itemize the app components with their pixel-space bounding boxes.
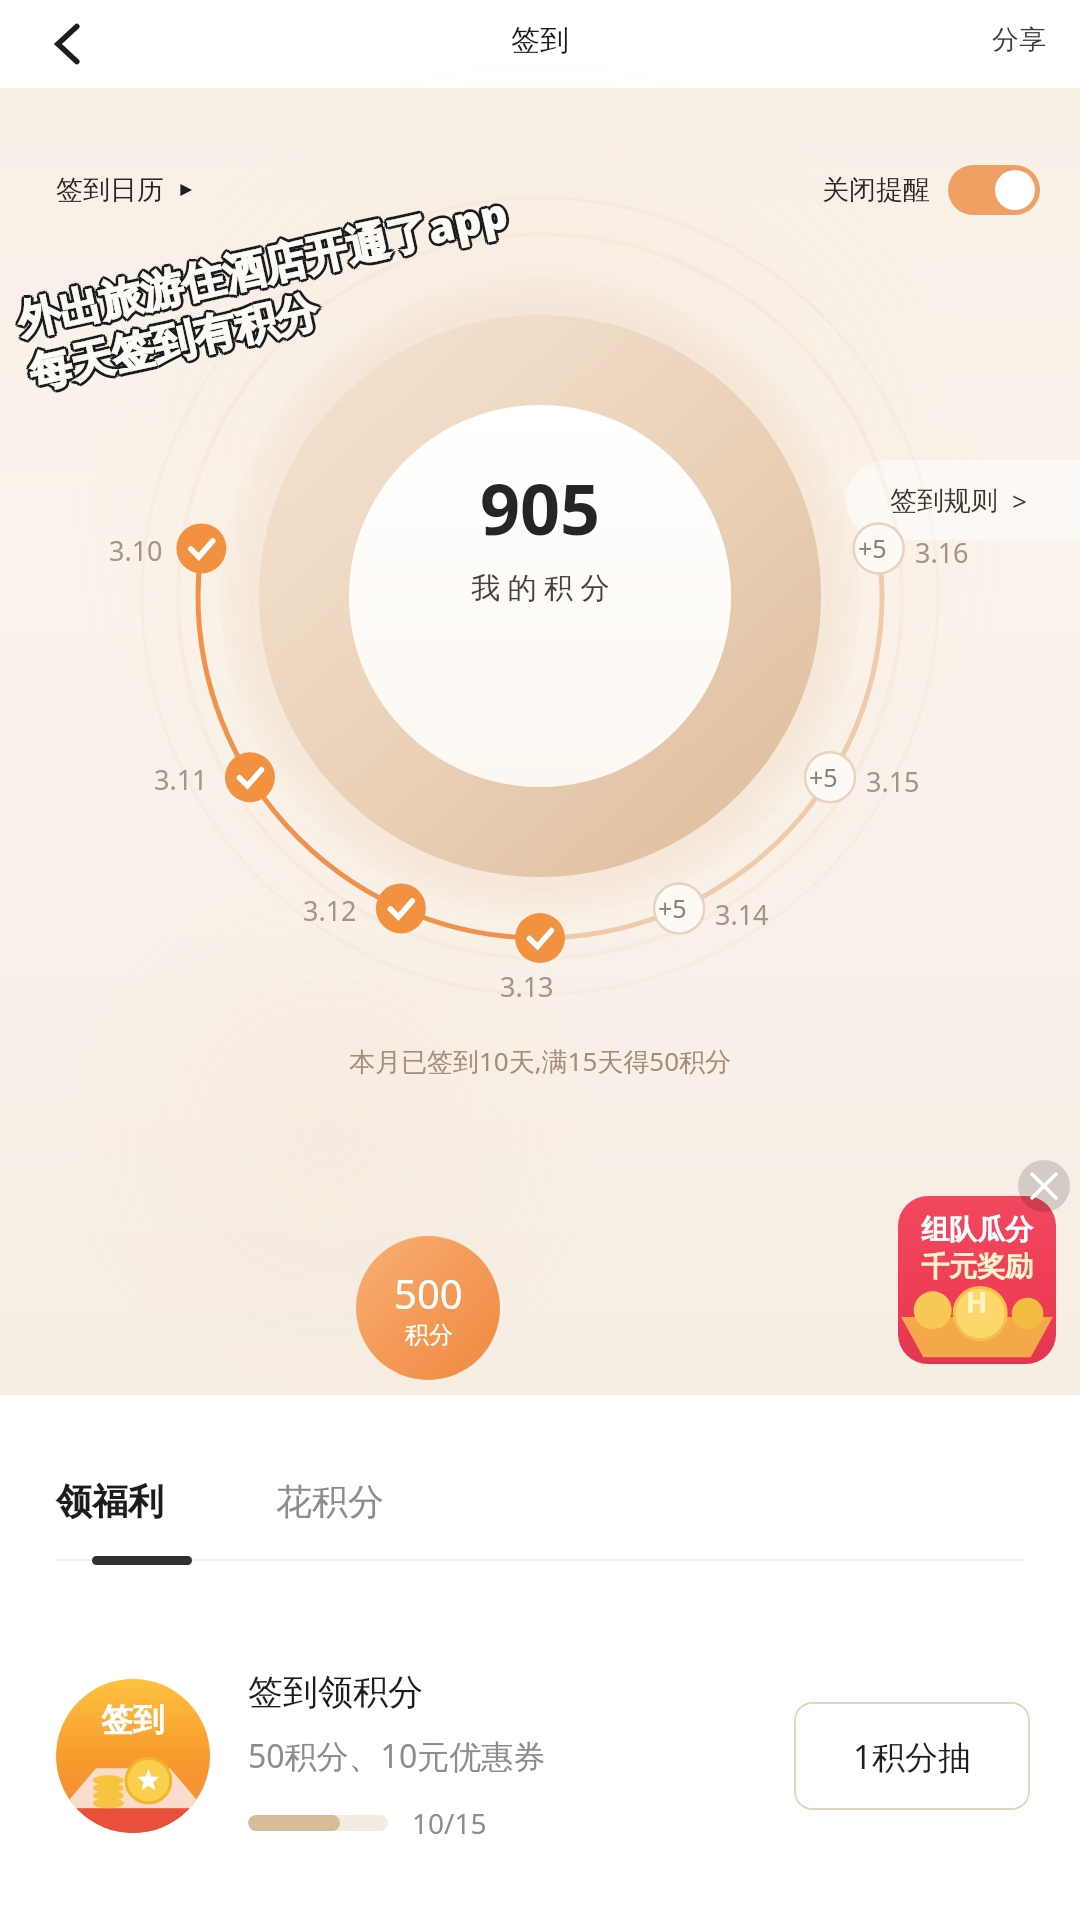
staticText: 3.14	[715, 896, 769, 933]
staticText: 每天签到有积分	[26, 283, 325, 398]
staticText: 3.11	[154, 761, 208, 798]
button[interactable]: 领福利	[50, 1467, 170, 1536]
button[interactable]: 签到规则	[846, 460, 1080, 540]
staticText: 50积分、10元优惠券	[248, 1734, 546, 1778]
staticText: 1积分抽	[853, 1734, 971, 1779]
staticText: 外出旅游住酒店开通了app	[11, 180, 513, 344]
staticText: 每天签到有积分	[24, 283, 322, 398]
button[interactable]: 分享	[958, 11, 1080, 77]
button[interactable]: 签到日历	[48, 165, 204, 215]
staticText: 外出旅游住酒店开通了app	[13, 181, 515, 345]
button[interactable]: 花积分	[270, 1467, 390, 1536]
staticText: 每天签到有积分	[22, 284, 321, 399]
staticText: 905	[480, 460, 601, 555]
staticText: 签到	[511, 22, 569, 59]
staticText: 积分	[405, 1320, 453, 1350]
staticText: 500	[394, 1266, 463, 1320]
staticText: 分享	[992, 23, 1046, 57]
staticText: 每天签到有积分	[27, 287, 325, 402]
button[interactable]: 关闭提醒	[816, 159, 1046, 221]
staticText: 每天签到有积分	[22, 286, 320, 402]
staticText: 关闭提醒	[822, 173, 930, 207]
staticText: 每天签到有积分	[25, 285, 323, 401]
staticText: 领福利	[56, 1479, 164, 1524]
staticText: 签到日历	[56, 173, 164, 207]
staticText: H	[966, 1283, 988, 1321]
button[interactable]: 签到	[0, 1651, 1080, 1861]
staticText: 每天签到有积分	[23, 288, 322, 403]
button[interactable]: Back	[26, 2, 110, 86]
staticText: 签到规则	[890, 484, 998, 518]
staticText: 10/15	[412, 1804, 487, 1842]
button[interactable]: 1积分抽	[794, 1702, 1030, 1810]
staticText: 千元奖励	[921, 1249, 1033, 1284]
button[interactable]: 500	[356, 1236, 500, 1380]
staticText: 签到领积分	[248, 1670, 423, 1714]
staticText: 组队瓜分	[921, 1212, 1033, 1247]
staticText: 签到	[101, 1700, 165, 1740]
staticText: 外出旅游住酒店开通了app	[15, 182, 516, 347]
staticText: 我 的 积 分	[471, 567, 610, 607]
staticText: >	[1012, 483, 1027, 518]
staticText: +5	[809, 760, 838, 794]
staticText: 3.13	[500, 968, 554, 1005]
staticText: 3.12	[303, 892, 357, 929]
staticText: 外出旅游住酒店开通了app	[10, 185, 512, 350]
staticText: 外出旅游住酒店开通了app	[12, 186, 514, 350]
staticText: 3.16	[915, 534, 969, 571]
button[interactable]: 组队瓜分千元奖励	[898, 1196, 1056, 1364]
staticText: +5	[658, 891, 687, 925]
staticText: 外出旅游住酒店开通了app	[12, 183, 513, 347]
staticText: 3.15	[866, 763, 920, 800]
button[interactable]: Close promotion	[1018, 1160, 1070, 1212]
staticText: 外出旅游住酒店开通了app	[9, 182, 511, 346]
staticText: 本月已签到10天,满15天得50积分	[0, 1043, 1080, 1079]
staticText: 3.10	[109, 532, 163, 569]
staticText: 外出旅游住酒店开通了app	[14, 185, 516, 349]
staticText: 花积分	[276, 1479, 384, 1524]
staticText: 每天签到有积分	[25, 288, 324, 404]
staticText: 外出旅游住酒店开通了app	[9, 184, 510, 348]
staticText: 每天签到有积分	[27, 285, 326, 400]
staticText: +5	[858, 531, 887, 565]
